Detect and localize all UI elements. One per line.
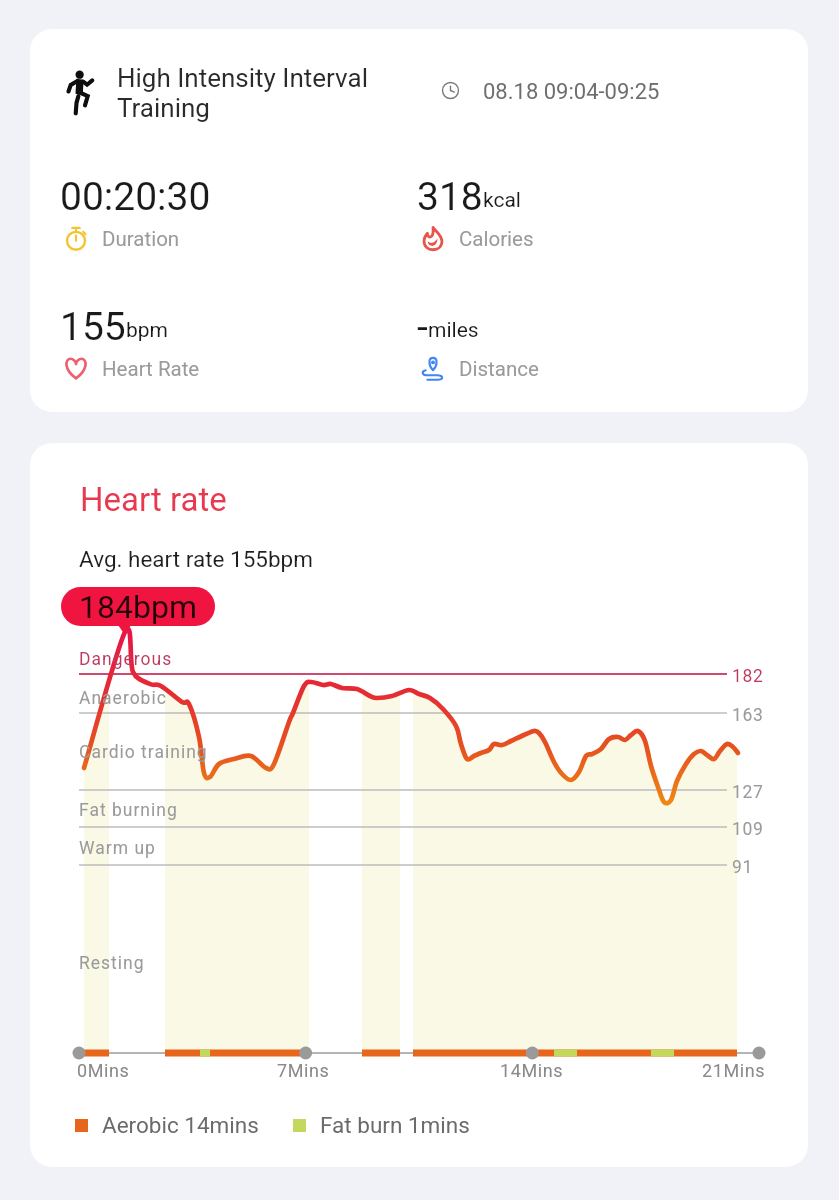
staticText: Calories (459, 227, 534, 251)
button[interactable]: Heart rate (30, 443, 808, 1167)
staticText: Fat burn 1mins (320, 1112, 470, 1138)
staticText: Fat burning (79, 800, 178, 821)
button[interactable]: - (417, 304, 717, 392)
button[interactable]: 318 (417, 174, 717, 262)
button[interactable]: 00:20:30 (60, 174, 360, 262)
staticText: 318 (417, 174, 483, 220)
staticText: 155 (60, 304, 126, 350)
staticText: 7Mins (277, 1060, 330, 1081)
other: Workout type (66, 69, 97, 118)
staticText: Aerobic 14mins (102, 1112, 259, 1138)
staticText: High Intensity Interval Training (117, 63, 368, 123)
staticText: kcal (483, 188, 521, 213)
staticText: Cardio training (79, 742, 208, 763)
staticText: bpm (126, 318, 168, 343)
staticText: 182 (732, 666, 764, 687)
staticText: 00:20:30 (60, 174, 211, 220)
staticText: 14Mins (500, 1060, 564, 1081)
staticText: 21Mins (702, 1060, 766, 1081)
staticText: 127 (732, 782, 764, 803)
staticText: 109 (732, 819, 764, 840)
staticText: Heart rate (80, 480, 227, 519)
staticText: Anaerobic (79, 688, 167, 709)
staticText: Dangerous (79, 649, 173, 670)
staticText: 184bpm (79, 588, 197, 626)
staticText: Resting (79, 953, 145, 974)
staticText: 91 (732, 857, 754, 878)
staticText: 08.18 09:04-09:25 (483, 79, 660, 105)
staticText: Warm up (79, 838, 156, 859)
staticText: miles (428, 318, 479, 343)
staticText: Duration (102, 227, 180, 251)
staticText: Avg. heart rate 155bpm (79, 546, 313, 572)
staticText: - (417, 304, 428, 350)
button[interactable]: Workout type (30, 29, 808, 412)
staticText: 163 (732, 705, 764, 726)
staticText: Distance (459, 357, 539, 381)
button[interactable]: Aerobic 14mins (75, 1105, 470, 1145)
staticText: 0Mins (77, 1060, 130, 1081)
button[interactable]: 155 (60, 304, 360, 392)
staticText: Heart Rate (102, 357, 200, 381)
